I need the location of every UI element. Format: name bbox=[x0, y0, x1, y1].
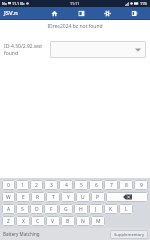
staticText: L bbox=[125, 206, 128, 213]
button[interactable]: J bbox=[89, 204, 103, 214]
staticText: K bbox=[109, 206, 113, 213]
button[interactable]: U bbox=[76, 192, 90, 202]
staticText: W bbox=[6, 194, 11, 201]
staticText: T bbox=[52, 194, 55, 201]
button[interactable]: G bbox=[59, 204, 73, 214]
staticText: 9 bbox=[140, 182, 143, 189]
staticText: 2 bbox=[35, 182, 38, 189]
staticText: 8 bbox=[125, 182, 128, 189]
button[interactable]: T bbox=[46, 192, 60, 202]
staticText: V bbox=[51, 218, 55, 225]
staticText: X bbox=[22, 218, 25, 225]
button[interactable]: W bbox=[2, 192, 15, 202]
button[interactable]: B bbox=[61, 216, 75, 226]
staticText: P bbox=[96, 194, 100, 201]
staticText: B bbox=[66, 218, 70, 225]
staticText: F bbox=[50, 206, 53, 213]
staticText: ID-4.50/2.92.wst found bbox=[4, 43, 46, 57]
button[interactable]: Backspace bbox=[106, 192, 148, 202]
button[interactable]: E bbox=[16, 192, 30, 202]
staticText: Y bbox=[67, 194, 70, 201]
button[interactable]: M bbox=[91, 216, 105, 226]
button[interactable]: H bbox=[74, 204, 88, 214]
staticText: G bbox=[64, 206, 68, 213]
button[interactable]: Y bbox=[61, 192, 75, 202]
button[interactable]: C bbox=[31, 216, 45, 226]
staticText: 11:11 bbox=[70, 1, 80, 6]
button[interactable]: F bbox=[44, 204, 58, 214]
button[interactable]: K bbox=[104, 204, 118, 214]
button[interactable]: Battery Matching bbox=[0, 231, 40, 237]
staticText: A bbox=[7, 206, 11, 213]
button[interactable]: 1 bbox=[16, 180, 29, 190]
button[interactable]: 0 bbox=[2, 180, 15, 190]
staticText: 6 bbox=[95, 182, 98, 189]
button[interactable]: R bbox=[31, 192, 45, 202]
button[interactable]: L bbox=[119, 204, 133, 214]
staticText: 11.1 Kb bbox=[12, 1, 25, 6]
button[interactable]: 5 bbox=[74, 180, 88, 190]
button[interactable]: N bbox=[76, 216, 90, 226]
button[interactable]: D bbox=[30, 204, 43, 214]
staticText: E bbox=[22, 194, 25, 201]
button[interactable]: P bbox=[91, 192, 105, 202]
button[interactable]: JSV.n bbox=[0, 9, 18, 17]
button[interactable]: 8 bbox=[119, 180, 133, 190]
staticText: H bbox=[79, 206, 83, 213]
button[interactable]: Supplementary bbox=[110, 230, 148, 239]
staticText: R bbox=[36, 194, 40, 201]
button[interactable]: 4 bbox=[59, 180, 73, 190]
staticText: IDres2024.bz not found bbox=[0, 23, 150, 30]
button[interactable]: 9 bbox=[134, 180, 148, 190]
staticText: No bbox=[2, 1, 7, 6]
button[interactable]: A bbox=[2, 204, 15, 214]
staticText: 3 bbox=[50, 182, 53, 189]
staticText: 5 bbox=[80, 182, 83, 189]
button[interactable]: 6 bbox=[89, 180, 103, 190]
button[interactable]: Home bbox=[44, 7, 64, 19]
staticText: 7 bbox=[110, 182, 113, 189]
staticText: 1 bbox=[21, 182, 24, 189]
staticText: N bbox=[81, 218, 85, 225]
staticText: U bbox=[81, 194, 85, 201]
button[interactable]: 7 bbox=[104, 180, 118, 190]
button[interactable]: V bbox=[46, 216, 60, 226]
staticText: 0 bbox=[7, 182, 10, 189]
button[interactable]: Z bbox=[2, 216, 15, 226]
button[interactable]: 3 bbox=[44, 180, 58, 190]
button[interactable]: X bbox=[16, 216, 30, 226]
button[interactable]: Device bbox=[71, 7, 91, 19]
button[interactable]: 2 bbox=[30, 180, 43, 190]
staticText: 11% bbox=[140, 1, 148, 6]
staticText: 4 bbox=[65, 182, 68, 189]
staticText: M bbox=[96, 218, 101, 225]
button[interactable]: S bbox=[16, 204, 29, 214]
button[interactable]: Battery bbox=[124, 7, 144, 19]
staticText: J bbox=[95, 206, 97, 213]
staticText: S bbox=[21, 206, 24, 213]
staticText: Supplementary bbox=[114, 232, 145, 238]
staticText: D bbox=[35, 206, 39, 213]
button[interactable]: Select option bbox=[50, 41, 146, 58]
button[interactable]: Settings bbox=[97, 7, 117, 19]
staticText: C bbox=[36, 218, 40, 225]
staticText: Z bbox=[7, 218, 10, 225]
